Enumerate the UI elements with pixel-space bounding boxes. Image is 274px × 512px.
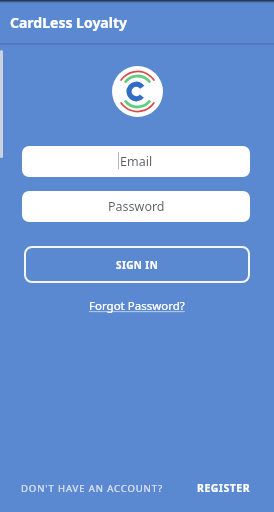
staticText: SIGN IN	[116, 258, 159, 272]
staticText: REGISTER	[197, 481, 251, 495]
staticText: CardLess Loyalty	[10, 13, 127, 32]
staticText: DON'T HAVE AN ACCOUNT?	[21, 482, 164, 495]
staticText: Forgot Password?	[89, 298, 185, 314]
staticText: Password	[108, 198, 165, 215]
staticText: Email	[120, 153, 153, 170]
